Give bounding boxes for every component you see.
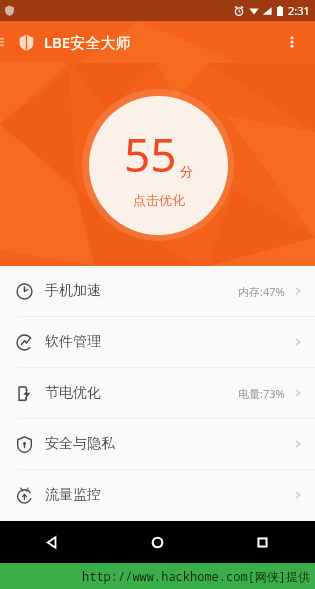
- button[interactable]: 流量监控: [0, 470, 315, 520]
- staticText: 手机加速: [45, 282, 101, 300]
- staticText: 流量监控: [45, 486, 101, 504]
- staticText: http://www.hackhome.com[网侠]提供: [82, 568, 311, 584]
- staticText: LBE安全大师: [44, 32, 131, 52]
- button[interactable]: 手机加速: [0, 266, 315, 316]
- button[interactable]: More options: [277, 27, 307, 57]
- staticText: 55: [124, 123, 177, 186]
- button[interactable]: 软件管理: [0, 317, 315, 367]
- button[interactable]: 安全与隐私: [0, 419, 315, 469]
- staticText: 内存:47%: [238, 284, 285, 299]
- button[interactable]: Home: [105, 521, 210, 563]
- button[interactable]: 节电优化: [0, 368, 315, 418]
- staticText: 节电优化: [45, 384, 101, 402]
- button[interactable]: Menu: [0, 21, 13, 63]
- staticText: 点击优化: [133, 192, 185, 208]
- button[interactable]: Back: [0, 521, 105, 563]
- button[interactable]: 55: [89, 96, 228, 235]
- staticText: 安全与隐私: [45, 435, 115, 453]
- staticText: 2:31: [288, 3, 310, 18]
- staticText: 电量:73%: [238, 386, 285, 401]
- staticText: 软件管理: [45, 333, 101, 351]
- button[interactable]: Recent apps: [210, 521, 315, 563]
- staticText: 分: [180, 163, 193, 179]
